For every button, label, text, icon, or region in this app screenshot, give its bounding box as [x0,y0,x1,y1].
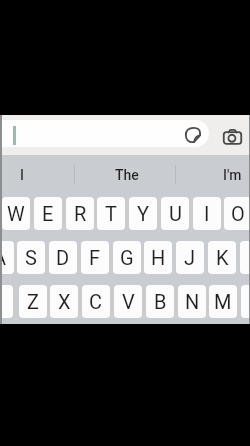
button[interactable]: J [176,241,204,274]
staticText: E [42,202,54,225]
button[interactable]: N [178,285,206,318]
staticText: W [7,202,25,225]
button[interactable]: R [66,197,94,230]
button[interactable]: Z [19,285,47,318]
staticText: R [74,202,87,225]
staticText: D [56,246,70,269]
button[interactable]: C [82,285,110,318]
button[interactable]: F [81,241,109,274]
staticText: U [169,202,182,225]
staticText: T [105,202,117,225]
staticText: V [122,290,135,313]
staticText: M [214,290,232,313]
button[interactable]: V [114,285,142,318]
button[interactable]: O [224,197,250,230]
staticText: S [25,246,37,269]
button[interactable]: T [97,197,125,230]
button[interactable]: S [17,241,45,274]
button[interactable]: A [0,241,14,274]
staticText: J [184,246,196,269]
staticText: N [185,290,200,313]
button[interactable]: X [50,285,78,318]
staticText: B [154,290,167,313]
button[interactable]: The [74,155,179,189]
staticText: Y [137,202,150,225]
button[interactable]: M [209,285,237,318]
staticText: I [204,202,210,225]
button[interactable]: I [193,197,221,230]
button[interactable]: L [240,241,250,274]
button[interactable]: Y [129,197,157,230]
staticText: K [216,246,229,269]
button[interactable]: W [2,197,30,230]
staticText: The [115,167,139,183]
button[interactable]: E [34,197,62,230]
button[interactable]: Camera [223,128,242,147]
staticText: C [89,290,103,313]
button[interactable]: K [208,241,236,274]
button[interactable]: B [146,285,174,318]
staticText: Z [27,290,39,313]
button[interactable]: I [0,155,74,189]
staticText: O [231,202,245,225]
staticText: I [20,167,24,183]
button[interactable]: G [113,241,141,274]
staticText: H [151,246,166,269]
staticText: F [89,246,101,269]
staticText: A [0,246,7,269]
button[interactable]: Shift [0,285,13,318]
staticText: G [120,246,134,269]
button[interactable]: H [144,241,172,274]
button[interactable]: Stickers [185,127,201,143]
button[interactable]: I'm [180,155,250,189]
staticText: I'm [223,167,242,183]
button[interactable]: U [161,197,189,230]
staticText: X [58,290,71,313]
button[interactable]: D [49,241,77,274]
button[interactable] [0,120,209,147]
button[interactable]: Backspace [241,285,250,318]
